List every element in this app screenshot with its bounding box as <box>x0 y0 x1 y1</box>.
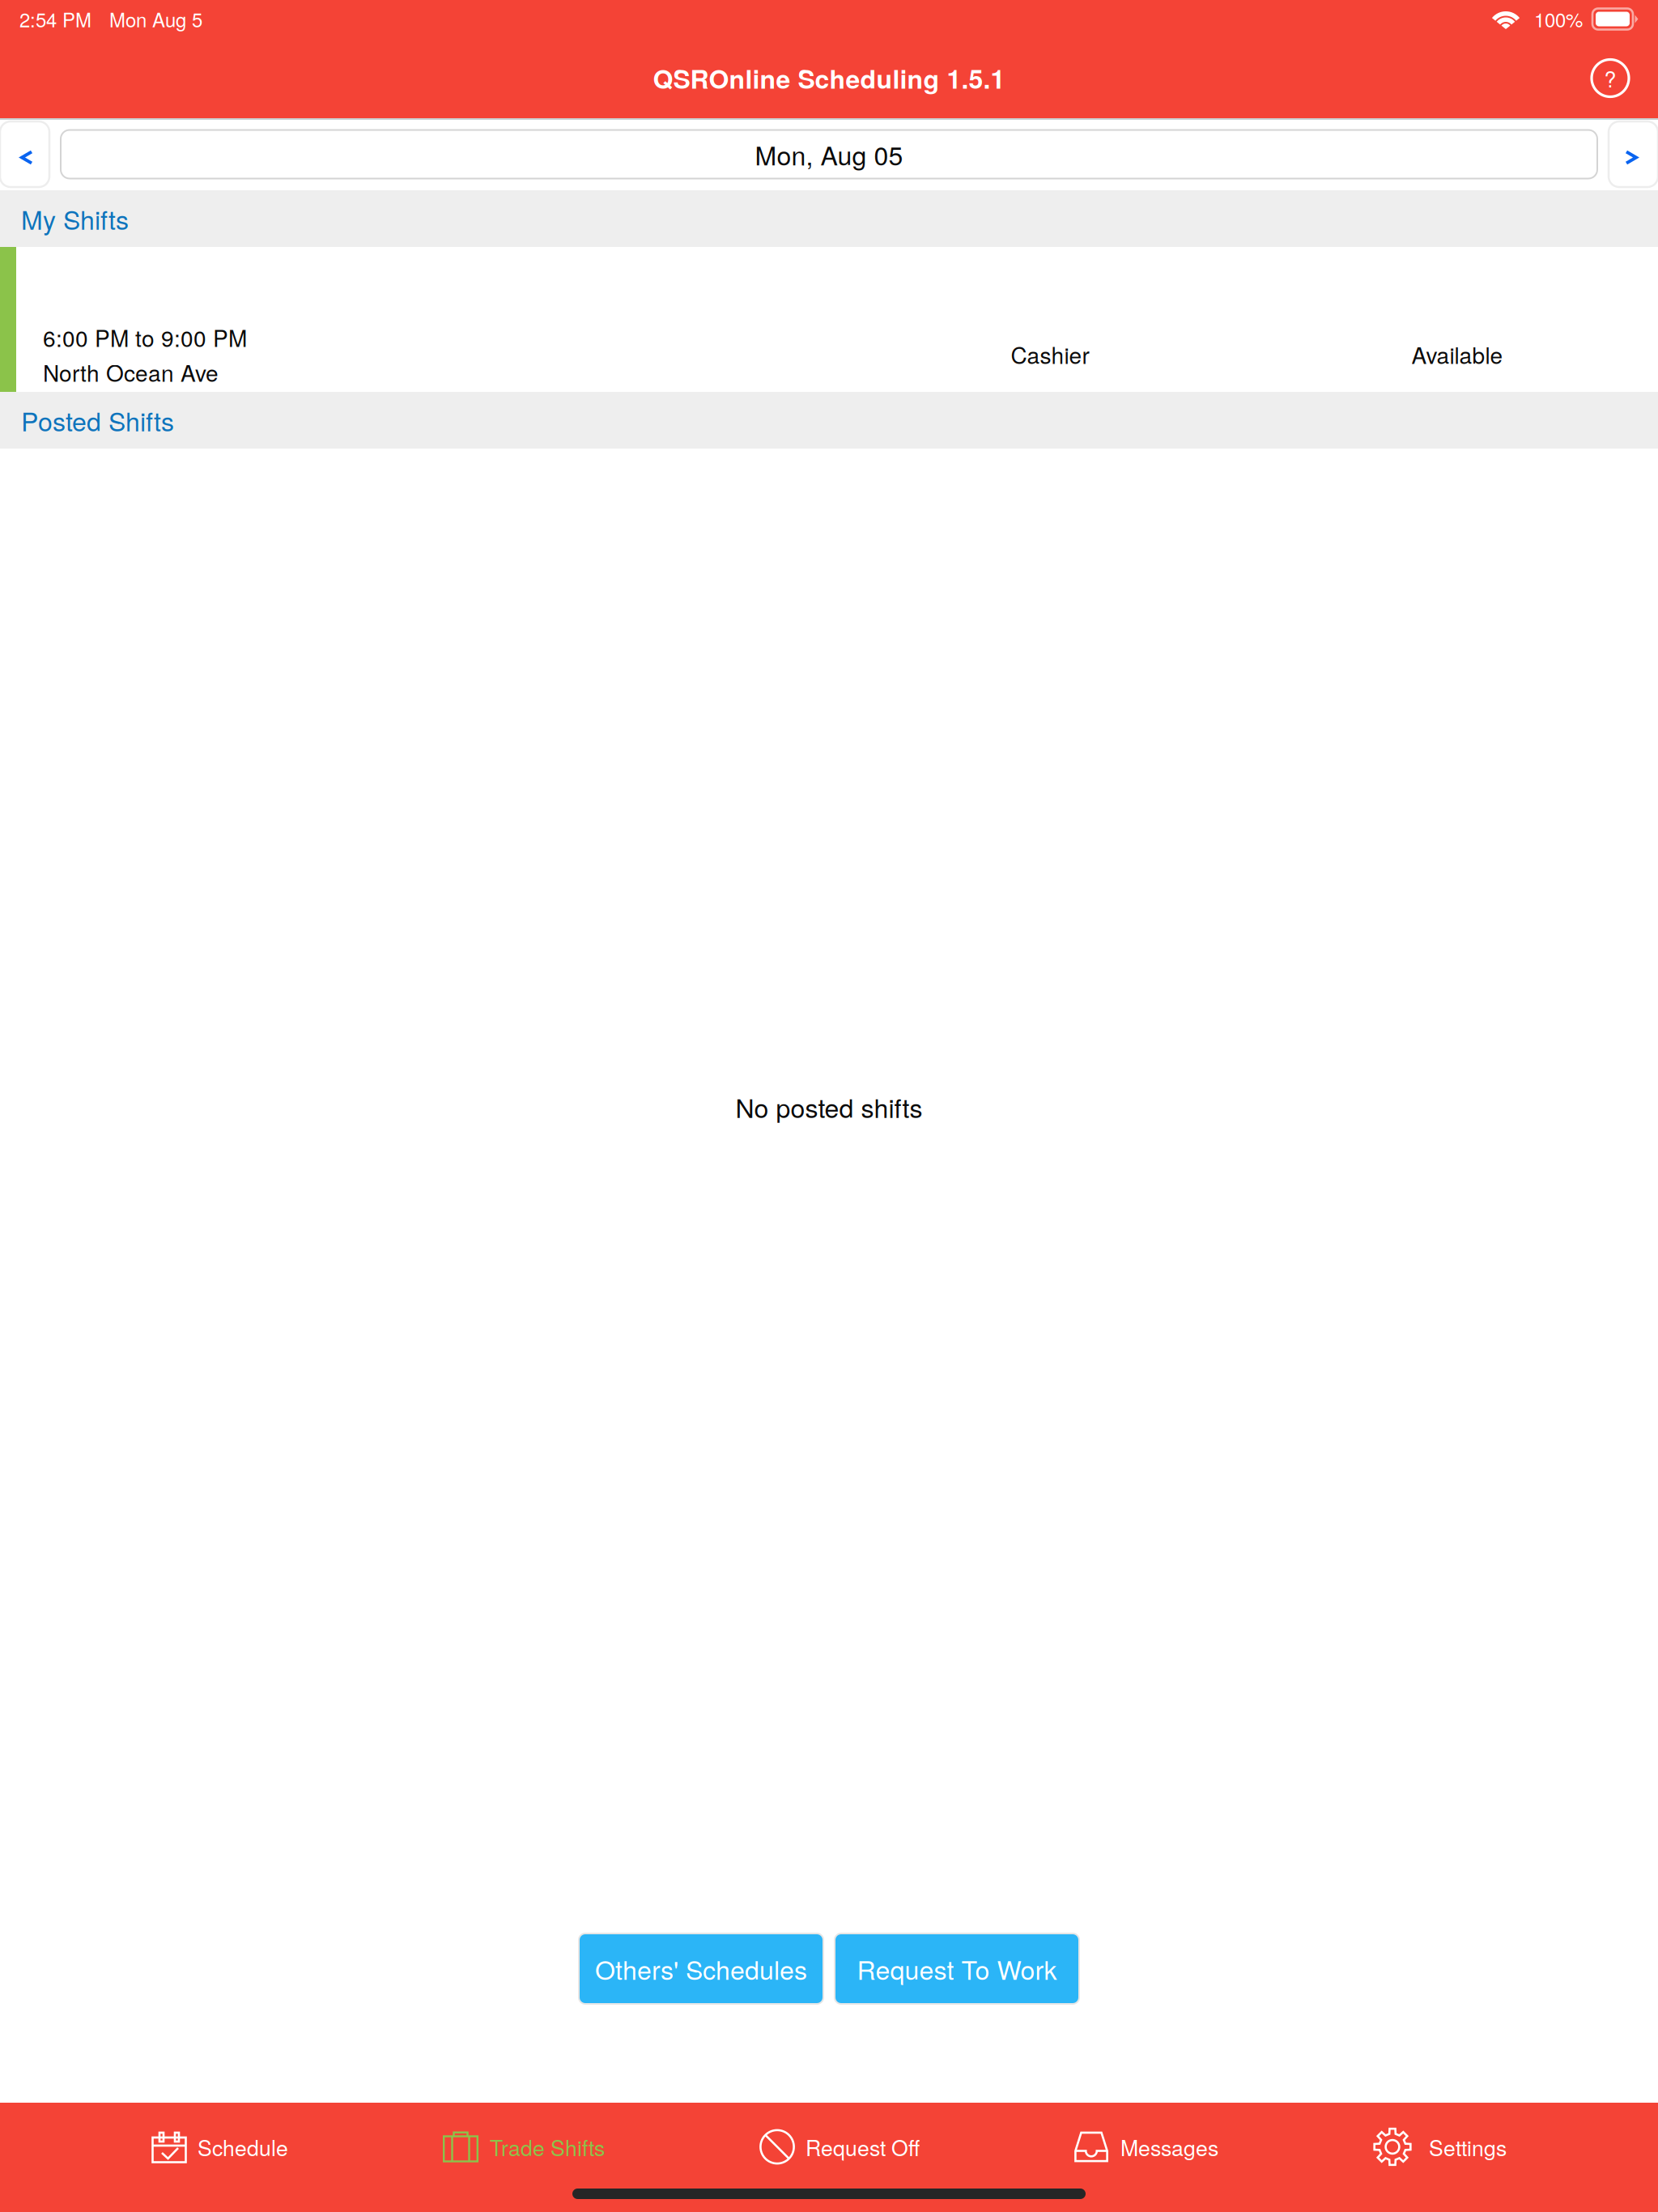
staticText: 2:54 PM <box>19 5 91 33</box>
staticText: No posted shifts <box>735 1088 923 1125</box>
staticText: Cashier <box>1011 338 1089 371</box>
staticText: North Ocean Ave <box>43 356 219 388</box>
staticText: 100% <box>1534 5 1583 33</box>
button[interactable]: Next day <box>1609 121 1658 187</box>
staticText: Posted Shifts <box>21 402 174 439</box>
staticText: ? <box>1604 63 1616 94</box>
staticText: Schedule <box>198 2131 288 2162</box>
button[interactable]: 6:00 PM to 9:00 PM <box>0 247 1658 392</box>
staticText: Messages <box>1120 2131 1218 2162</box>
staticText: Others' Schedules <box>595 1950 807 1987</box>
staticText: Request To Work <box>857 1950 1057 1987</box>
staticText: Trade Shifts <box>490 2131 605 2162</box>
staticText: Request Off <box>806 2131 920 2162</box>
staticText: QSROnline Scheduling 1.5.1 <box>653 60 1005 97</box>
button[interactable]: Help <box>1580 48 1640 108</box>
staticText: Mon Aug 5 <box>109 5 202 33</box>
button[interactable]: Trade Shifts <box>443 2112 605 2181</box>
button[interactable]: Schedule <box>151 2112 288 2181</box>
staticText: Settings <box>1429 2131 1507 2162</box>
button[interactable]: Previous day <box>0 121 49 187</box>
button[interactable]: Messages <box>1074 2112 1218 2181</box>
button[interactable]: Request To Work <box>835 1933 1079 2004</box>
staticText: Available <box>1411 338 1503 371</box>
staticText: 6:00 PM to 9:00 PM <box>43 321 247 353</box>
button[interactable]: Others' Schedules <box>579 1933 823 2004</box>
button[interactable]: Settings <box>1373 2112 1507 2181</box>
button[interactable]: Request Off <box>759 2112 920 2181</box>
staticText: Mon, Aug 05 <box>755 136 903 173</box>
staticText: My Shifts <box>21 200 129 237</box>
